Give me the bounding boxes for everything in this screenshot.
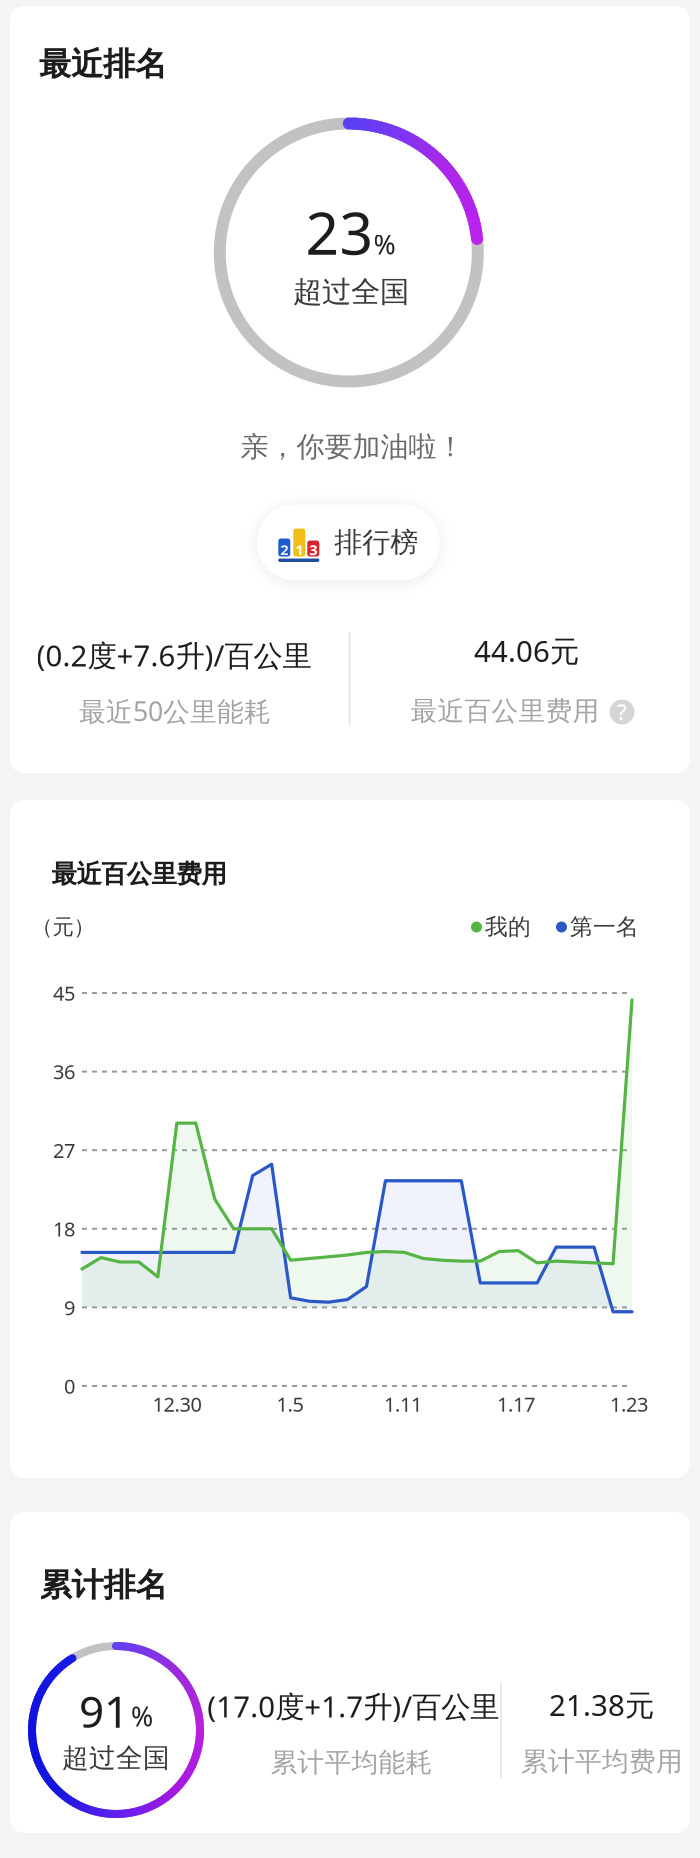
staticText: 1 bbox=[295, 540, 303, 559]
staticText: % bbox=[373, 226, 395, 262]
staticText: 44.06元 bbox=[474, 631, 579, 670]
staticText: 最近百公里费用 bbox=[51, 858, 226, 889]
staticText: ? bbox=[617, 698, 627, 726]
staticText: 23 bbox=[305, 193, 373, 271]
staticText: （元） bbox=[31, 914, 94, 940]
staticText: 2 bbox=[280, 540, 288, 559]
staticText: 21.38元 bbox=[549, 1685, 654, 1724]
staticText: 36 bbox=[53, 1058, 75, 1085]
staticText: 45 bbox=[53, 980, 75, 1006]
staticText: 27 bbox=[53, 1137, 75, 1163]
staticText: 排行榜 bbox=[334, 525, 418, 560]
staticText: 91 bbox=[79, 1681, 129, 1740]
staticText: 最近50公里能耗 bbox=[79, 693, 271, 729]
staticText: 超过全国 bbox=[62, 1742, 170, 1775]
staticText: 累计平均能耗 bbox=[270, 1746, 432, 1779]
staticText: 1.11 bbox=[384, 1391, 422, 1417]
staticText: 1.5 bbox=[276, 1391, 303, 1417]
staticText: 累计平均费用 bbox=[521, 1745, 683, 1778]
staticText: 最近百公里费用 bbox=[410, 695, 599, 727]
staticText: 累计排名 bbox=[39, 1565, 167, 1605]
staticText: % bbox=[131, 1698, 153, 1734]
staticText: 我的 bbox=[485, 913, 531, 941]
staticText: 亲，你要加油啦！ bbox=[240, 430, 464, 464]
staticText: 超过全国 bbox=[293, 274, 409, 310]
button[interactable]: 1 bbox=[257, 504, 440, 580]
staticText: 第一名 bbox=[570, 913, 639, 941]
staticText: 1.23 bbox=[610, 1391, 648, 1417]
staticText: 9 bbox=[64, 1294, 75, 1321]
staticText: (0.2度+7.6升)/百公里 bbox=[36, 635, 311, 674]
staticText: 18 bbox=[53, 1215, 75, 1242]
staticText: 最近排名 bbox=[39, 44, 167, 84]
staticText: 0 bbox=[64, 1373, 75, 1399]
staticText: (17.0度+1.7升)/百公里 bbox=[207, 1686, 499, 1725]
staticText: 12.30 bbox=[152, 1391, 201, 1417]
staticText: 3 bbox=[309, 540, 317, 559]
staticText: 1.17 bbox=[497, 1391, 535, 1417]
